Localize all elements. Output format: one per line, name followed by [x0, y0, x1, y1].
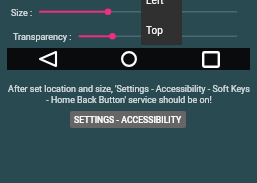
button[interactable]: Back: [38, 50, 57, 68]
staticText: - Home Back Button' service should be on…: [46, 95, 212, 105]
button[interactable]: Home: [120, 50, 138, 68]
staticText: Size :: [11, 8, 33, 19]
staticText: Top: [146, 25, 163, 37]
staticText: Left: [146, 0, 164, 7]
staticText: SETTINGS - ACCESSIBILITY: [74, 115, 182, 125]
button[interactable]: Recents: [201, 50, 220, 68]
staticText: After set location and size, 'Settings -…: [8, 84, 250, 94]
staticText: Transparency :: [13, 32, 72, 43]
button[interactable]: SETTINGS - ACCESSIBILITY: [70, 111, 186, 128]
